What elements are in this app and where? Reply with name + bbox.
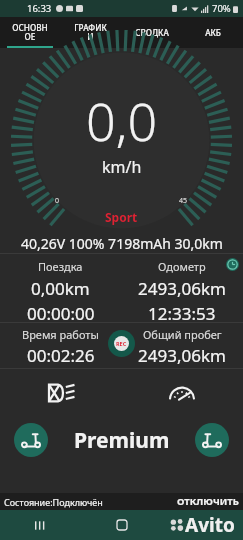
staticText: Avito: [185, 512, 235, 538]
staticText: 2493,06km: [138, 277, 226, 300]
button[interactable]: Одометр: [121, 254, 243, 322]
staticText: АКБ: [205, 27, 221, 38]
staticText: 70%: [212, 2, 231, 15]
staticText: 00:02:26: [27, 344, 95, 367]
button[interactable]: СВОДКА: [121, 17, 182, 48]
staticText: 0: [55, 196, 60, 206]
button[interactable]: Recent apps: [0, 510, 81, 540]
button[interactable]: Общий пробег: [121, 323, 243, 368]
staticText: Состояние:Подключён: [4, 496, 103, 508]
staticText: ОСНОВН ОЕ: [12, 22, 48, 43]
staticText: Premium: [74, 426, 170, 455]
button[interactable]: ОТКЛЮЧИТЬ: [177, 495, 243, 508]
staticText: 0,00km: [31, 277, 90, 300]
staticText: Sport: [105, 209, 138, 225]
button[interactable]: Headlight: [0, 369, 121, 416]
staticText: 2493,06km: [138, 344, 226, 367]
button[interactable]: АКБ: [182, 17, 243, 48]
staticText: Время работы: [22, 327, 99, 342]
staticText: 0,0: [86, 85, 158, 156]
button[interactable]: Reset trip: [226, 258, 239, 271]
button[interactable]: Scooter right: [195, 423, 229, 457]
button[interactable]: Cruise control: [121, 369, 243, 416]
button[interactable]: ОСНОВН ОЕ: [0, 17, 60, 48]
staticText: km/h: [102, 156, 142, 178]
staticText: 40,26V 100% 7198mAh 30,0km: [21, 234, 223, 253]
button[interactable]: Record: [108, 330, 135, 357]
button[interactable]: ГРАФИК И: [60, 17, 121, 48]
button[interactable]: Home: [81, 510, 162, 540]
button[interactable]: Время работы: [0, 323, 121, 368]
staticText: 16:33: [27, 2, 52, 15]
staticText: 12:33:53: [148, 302, 216, 322]
staticText: ОТКЛЮЧИТЬ: [177, 495, 239, 508]
staticText: ГРАФИК И: [74, 22, 107, 43]
staticText: REC: [116, 340, 127, 347]
staticText: Одометр: [158, 259, 206, 274]
staticText: Поездка: [38, 259, 83, 274]
staticText: СВОДКА: [135, 27, 169, 38]
button[interactable]: Scooter left: [14, 423, 48, 457]
staticText: Общий пробег: [143, 327, 222, 342]
staticText: 45: [179, 196, 188, 206]
staticText: 00:00:00: [27, 302, 95, 322]
button[interactable]: Поездка: [0, 254, 121, 322]
